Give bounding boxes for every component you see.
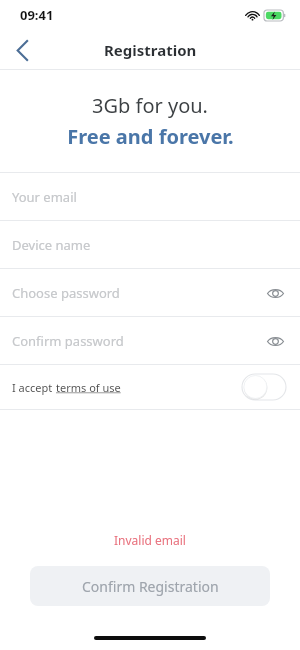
staticText: Device name [12,236,91,254]
staticText: Invalid email [0,532,300,548]
button[interactable]: Back [0,30,44,70]
staticText: Choose password [12,284,120,302]
button[interactable]: Your email [0,173,300,220]
staticText: terms of use [56,380,121,395]
staticText: 3Gb for you. [92,92,208,119]
button[interactable]: Confirm password [0,317,300,364]
button[interactable]: Show password [258,324,292,358]
button[interactable]: Device name [0,221,300,268]
staticText: I accept [12,380,56,395]
staticText: Registration [104,40,197,60]
staticText: Your email [12,188,77,206]
button[interactable]: Accept terms toggle [242,374,286,400]
staticText: Free and forever. [67,123,234,150]
button[interactable]: Confirm Registration [30,566,270,606]
staticText: 09:41 [20,6,54,24]
button[interactable]: Show password [258,276,292,310]
button[interactable]: I accept [12,380,242,395]
staticText: Confirm password [12,332,124,350]
button[interactable]: Choose password [0,269,300,316]
staticText: Confirm Registration [82,577,219,596]
